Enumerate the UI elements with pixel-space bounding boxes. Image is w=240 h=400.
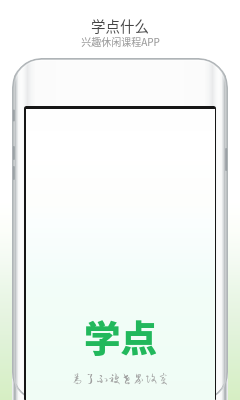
staticText: 学点什么 <box>91 15 149 36</box>
staticText: 为了不被世界改变 <box>71 372 170 384</box>
staticText: 兴趣休闲课程APP <box>81 34 160 48</box>
staticText: 学点 <box>84 310 157 363</box>
